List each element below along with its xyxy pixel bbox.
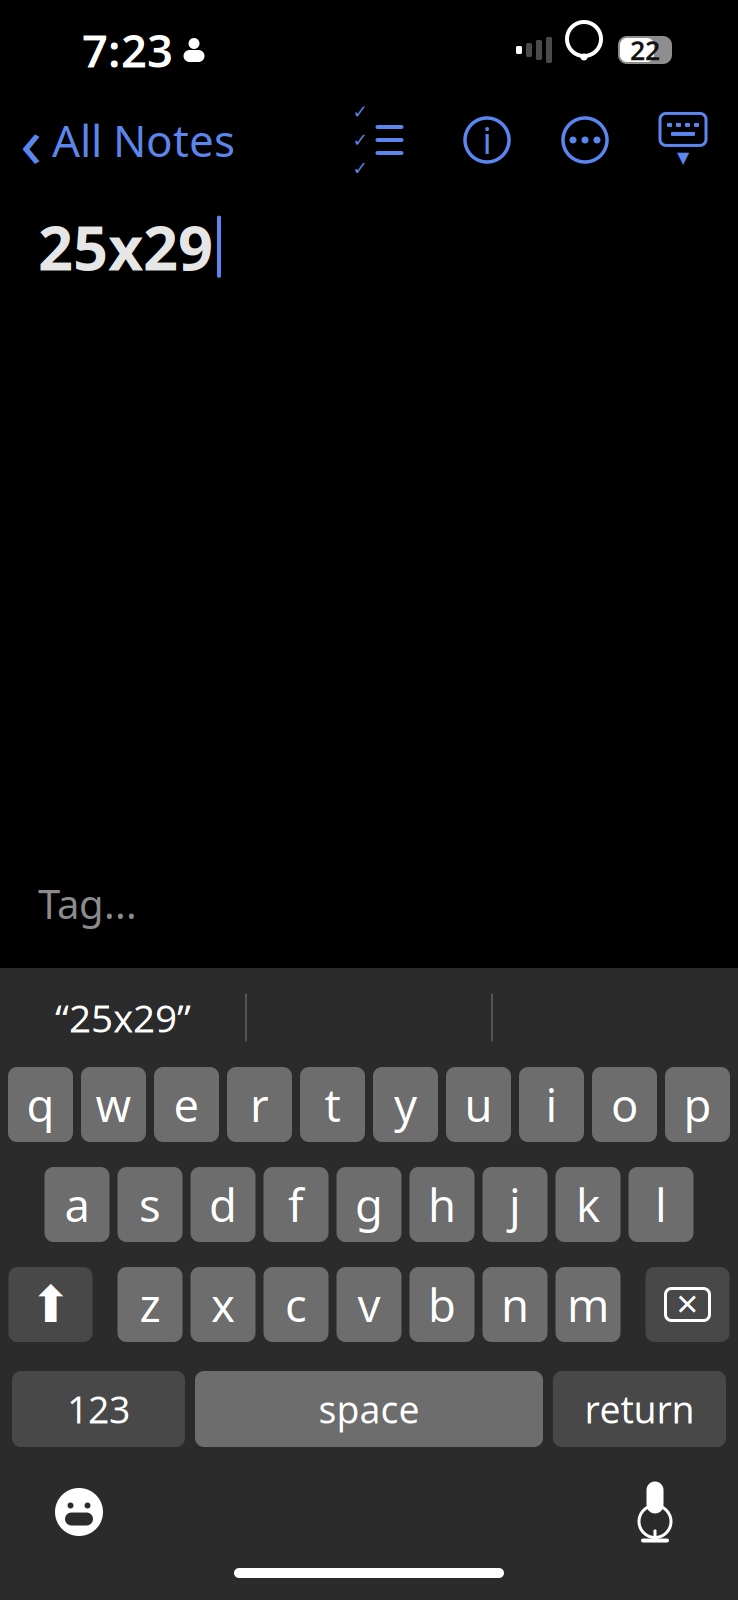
button[interactable]: d bbox=[190, 1167, 255, 1242]
staticText: t bbox=[324, 1074, 340, 1135]
button[interactable]: n bbox=[482, 1267, 547, 1342]
staticText: ✓ bbox=[352, 158, 368, 179]
button[interactable]: space bbox=[195, 1371, 543, 1447]
button[interactable]: m bbox=[555, 1267, 620, 1342]
button[interactable]: z bbox=[117, 1267, 182, 1342]
button[interactable]: Dictation bbox=[616, 1473, 694, 1551]
staticText: d bbox=[209, 1174, 237, 1235]
button[interactable]: “25x29” bbox=[1, 971, 245, 1063]
button[interactable]: More bbox=[552, 107, 618, 173]
staticText: q bbox=[26, 1074, 54, 1135]
button[interactable]: Delete bbox=[645, 1267, 729, 1342]
staticText: n bbox=[501, 1274, 529, 1335]
button[interactable]: i bbox=[519, 1067, 584, 1142]
staticText: b bbox=[428, 1274, 456, 1335]
button[interactable]: l bbox=[628, 1167, 693, 1242]
staticText: ▼ bbox=[677, 148, 689, 167]
button[interactable]: f bbox=[263, 1167, 328, 1242]
staticText: 7:23 bbox=[82, 20, 173, 80]
button[interactable]: return bbox=[553, 1371, 726, 1447]
button[interactable]: k bbox=[555, 1167, 620, 1242]
button[interactable]: u bbox=[446, 1067, 511, 1142]
staticText: 22 bbox=[630, 32, 660, 68]
staticText: m bbox=[567, 1274, 609, 1335]
button[interactable]: 123 bbox=[12, 1371, 185, 1447]
staticText: k bbox=[576, 1174, 600, 1235]
staticText: g bbox=[355, 1174, 383, 1235]
button[interactable]: q bbox=[8, 1067, 73, 1142]
button[interactable]: h bbox=[409, 1167, 474, 1242]
staticText: u bbox=[464, 1074, 492, 1135]
staticText: z bbox=[139, 1274, 160, 1335]
staticText: f bbox=[288, 1174, 304, 1235]
staticText: i bbox=[545, 1074, 557, 1135]
staticText: ✓ bbox=[352, 129, 368, 151]
staticText: x bbox=[211, 1274, 235, 1335]
button[interactable]: y bbox=[373, 1067, 438, 1142]
staticText: 123 bbox=[67, 1384, 130, 1434]
staticText: space bbox=[318, 1384, 419, 1434]
staticText: w bbox=[95, 1074, 131, 1135]
staticText: Tag... bbox=[38, 877, 137, 930]
button[interactable]: w bbox=[81, 1067, 146, 1142]
staticText: a bbox=[64, 1174, 89, 1235]
staticText: 25x29 bbox=[38, 206, 213, 287]
button[interactable]: Shift bbox=[8, 1267, 92, 1342]
staticText: i bbox=[482, 116, 491, 164]
button[interactable]: Info bbox=[454, 107, 520, 173]
staticText: p bbox=[683, 1074, 711, 1135]
button[interactable]: Hide Keyboard bbox=[650, 107, 716, 173]
button[interactable]: x bbox=[190, 1267, 255, 1342]
button[interactable]: t bbox=[300, 1067, 365, 1142]
button[interactable]: Checklist bbox=[342, 107, 414, 173]
button[interactable]: ‹ bbox=[0, 107, 235, 173]
staticText: ‹ bbox=[20, 92, 42, 188]
button[interactable]: r bbox=[227, 1067, 292, 1142]
staticText: ✕ bbox=[675, 1288, 700, 1321]
staticText: l bbox=[655, 1174, 667, 1235]
staticText: return bbox=[584, 1384, 694, 1434]
button[interactable]: c bbox=[263, 1267, 328, 1342]
button[interactable]: o bbox=[592, 1067, 657, 1142]
button[interactable]: a bbox=[44, 1167, 109, 1242]
staticText: r bbox=[250, 1074, 269, 1135]
staticText: ✓ bbox=[352, 101, 368, 122]
staticText: “25x29” bbox=[55, 992, 191, 1043]
staticText: v bbox=[357, 1274, 380, 1335]
staticText: y bbox=[394, 1074, 417, 1135]
staticText: j bbox=[509, 1174, 521, 1235]
staticText: e bbox=[173, 1074, 199, 1135]
staticText: ⬆ bbox=[29, 1276, 71, 1333]
button[interactable]: j bbox=[482, 1167, 547, 1242]
button[interactable]: v bbox=[336, 1267, 401, 1342]
staticText: h bbox=[428, 1174, 456, 1235]
staticText: c bbox=[285, 1274, 307, 1335]
staticText: o bbox=[611, 1074, 638, 1135]
button[interactable]: g bbox=[336, 1167, 401, 1242]
button[interactable]: b bbox=[409, 1267, 474, 1342]
button[interactable]: e bbox=[154, 1067, 219, 1142]
button[interactable]: p bbox=[665, 1067, 730, 1142]
button[interactable]: s bbox=[117, 1167, 182, 1242]
staticText: s bbox=[139, 1174, 161, 1235]
button[interactable]: Emoji bbox=[40, 1473, 118, 1551]
staticText: All Notes bbox=[52, 111, 235, 169]
